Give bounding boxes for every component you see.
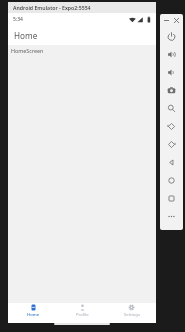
staticText: Home [14, 30, 38, 41]
button[interactable]: Minimize [163, 17, 170, 24]
button[interactable]: Home [8, 303, 58, 319]
staticText: Settings [124, 312, 140, 318]
button[interactable]: Home [160, 171, 183, 189]
staticText: 5:34 [13, 16, 23, 23]
button[interactable]: Volume down [160, 63, 183, 81]
button[interactable]: Rotate right [160, 135, 183, 153]
button[interactable]: Rotate left [160, 117, 183, 135]
button[interactable]: Profile [58, 303, 107, 319]
button[interactable]: Take screenshot [160, 81, 183, 99]
button[interactable]: Zoom [160, 99, 183, 117]
button[interactable]: Settings [107, 303, 156, 319]
button[interactable]: Back [160, 153, 183, 171]
staticText: HomeScreen [11, 47, 44, 54]
staticText: Profile [76, 312, 89, 318]
button[interactable]: More [160, 207, 183, 225]
button[interactable]: Power [160, 27, 183, 45]
staticText: Android Emulator - Expo2:5554 [13, 4, 91, 11]
button[interactable]: Close [173, 17, 180, 24]
staticText: Home [27, 312, 40, 318]
button[interactable]: Overview [160, 189, 183, 207]
button[interactable]: Volume up [160, 45, 183, 63]
